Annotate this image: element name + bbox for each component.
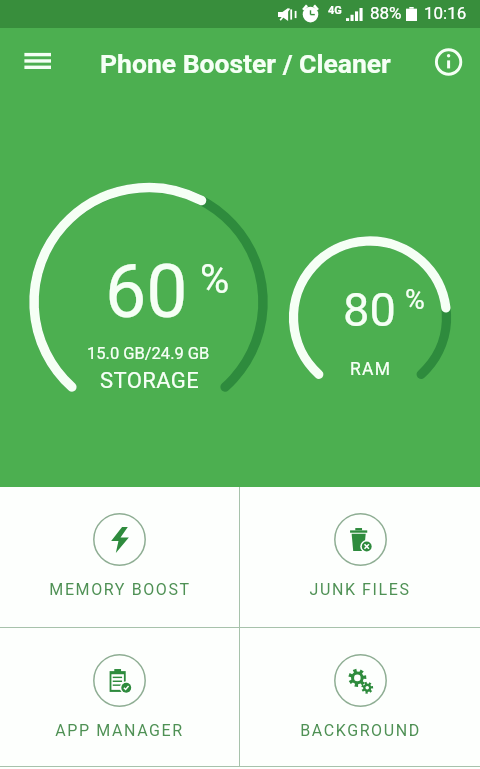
button[interactable]: Open navigation menu (14, 35, 61, 90)
staticText: 80 (343, 282, 396, 337)
staticText: 10:16 (424, 3, 467, 23)
staticText: RAM (350, 359, 392, 380)
staticText: % (200, 256, 230, 303)
staticText: APP MANAGER (55, 721, 184, 740)
staticText: BACKGROUND (300, 721, 421, 740)
staticText: MEMORY BOOST (49, 580, 191, 599)
button[interactable]: MEMORY BOOST (0, 487, 239, 627)
staticText: 60 (105, 249, 188, 335)
button[interactable]: APP MANAGER (0, 628, 239, 766)
button[interactable]: BACKGROUND (240, 628, 480, 766)
staticText: % (405, 284, 425, 316)
staticText: JUNK FILES (309, 580, 411, 599)
staticText: 4G (328, 4, 342, 17)
staticText: STORAGE (100, 368, 200, 394)
button[interactable]: JUNK FILES (240, 487, 480, 627)
button[interactable]: Info (425, 38, 472, 85)
staticText: 88% (370, 3, 402, 23)
staticText: 15.0 GB/24.9 GB (87, 344, 210, 363)
staticText: Phone Booster / Cleaner (100, 48, 391, 79)
